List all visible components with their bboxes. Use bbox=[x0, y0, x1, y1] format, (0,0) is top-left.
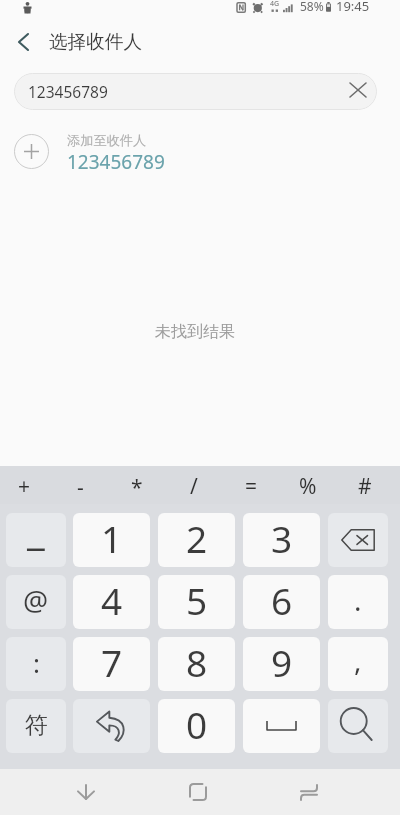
staticText: 未找到结果 bbox=[155, 322, 235, 342]
staticText: 4 bbox=[101, 575, 123, 625]
staticText: 6 bbox=[271, 575, 293, 625]
button[interactable]: space bbox=[243, 699, 320, 753]
button[interactable]: 3 bbox=[243, 513, 320, 567]
staticText: 58% bbox=[300, 0, 324, 14]
staticText: . bbox=[354, 581, 362, 619]
button[interactable]: % bbox=[282, 466, 334, 504]
button[interactable]: Clear text bbox=[341, 73, 375, 107]
button[interactable]: _ bbox=[6, 513, 66, 567]
staticText: 1 bbox=[101, 513, 123, 563]
staticText: + bbox=[18, 472, 31, 501]
button[interactable]: Recents bbox=[284, 777, 334, 807]
button[interactable]: 添加至收件人 bbox=[0, 122, 400, 180]
staticText: - bbox=[77, 473, 84, 502]
button[interactable]: 2 bbox=[158, 513, 235, 567]
button[interactable]: . bbox=[328, 575, 388, 629]
button[interactable]: = bbox=[225, 466, 277, 504]
button[interactable]: @ bbox=[6, 575, 66, 629]
staticText: % bbox=[299, 472, 317, 501]
button[interactable]: / bbox=[168, 466, 220, 504]
button[interactable]: + bbox=[0, 466, 50, 504]
staticText: 2 bbox=[186, 513, 208, 563]
button[interactable]: 0 bbox=[158, 699, 235, 753]
button[interactable]: * bbox=[111, 466, 163, 504]
staticText: 5 bbox=[186, 575, 208, 625]
staticText: 7 bbox=[101, 637, 123, 687]
staticText: 123456789 bbox=[28, 81, 108, 102]
button[interactable]: 1 bbox=[73, 513, 150, 567]
button[interactable]: 5 bbox=[158, 575, 235, 629]
staticText: 添加至收件人 bbox=[67, 132, 147, 149]
staticText: # bbox=[358, 472, 372, 501]
button[interactable]: 123456789 bbox=[14, 73, 377, 110]
staticText: 3 bbox=[271, 513, 293, 563]
staticText: 符 bbox=[25, 711, 48, 740]
staticText: : bbox=[33, 645, 40, 680]
staticText: / bbox=[190, 472, 198, 501]
button[interactable]: undo bbox=[73, 699, 150, 753]
staticText: 19:45 bbox=[336, 0, 370, 15]
staticText: 选择收件人 bbox=[49, 30, 142, 53]
button[interactable]: # bbox=[339, 466, 391, 504]
staticText: 8 bbox=[186, 637, 208, 687]
button[interactable]: Back bbox=[6, 25, 40, 59]
button[interactable]: : bbox=[6, 637, 66, 691]
button[interactable]: 7 bbox=[73, 637, 150, 691]
button[interactable]: , bbox=[328, 637, 388, 691]
staticText: 4G bbox=[270, 0, 280, 9]
button[interactable]: backspace bbox=[328, 513, 388, 567]
staticText: * bbox=[131, 473, 143, 502]
staticText: , bbox=[354, 641, 362, 679]
button[interactable]: 6 bbox=[243, 575, 320, 629]
staticText: = bbox=[245, 472, 258, 501]
button[interactable]: 4 bbox=[73, 575, 150, 629]
staticText: _ bbox=[27, 513, 45, 556]
staticText: @ bbox=[23, 581, 49, 619]
staticText: 9 bbox=[271, 637, 293, 687]
button[interactable]: - bbox=[54, 466, 106, 504]
button[interactable]: 8 bbox=[158, 637, 235, 691]
staticText: 123456789 bbox=[67, 149, 165, 175]
button[interactable]: Hide keyboard bbox=[61, 777, 111, 807]
button[interactable]: Home bbox=[173, 777, 223, 807]
button[interactable]: search bbox=[328, 699, 388, 753]
button[interactable]: 9 bbox=[243, 637, 320, 691]
staticText: 0 bbox=[186, 699, 208, 749]
button[interactable]: 符 bbox=[6, 699, 66, 753]
